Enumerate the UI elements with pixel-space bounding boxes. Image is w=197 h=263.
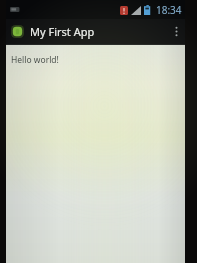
staticText: My First App <box>30 24 95 39</box>
button[interactable]: More options <box>167 19 185 44</box>
button[interactable]: My First App <box>11 24 95 39</box>
staticText: 18:34 <box>156 3 182 17</box>
staticText: Hello world! <box>11 54 59 66</box>
